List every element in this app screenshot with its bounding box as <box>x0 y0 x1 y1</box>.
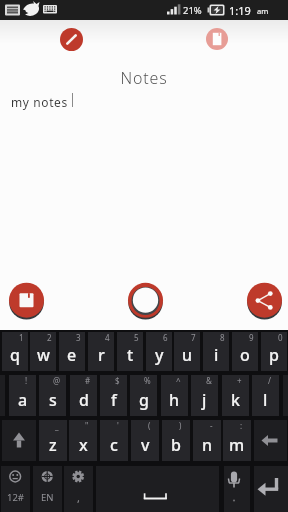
button[interactable]: q <box>2 332 28 371</box>
button[interactable]: z <box>39 420 67 461</box>
staticText: p <box>269 344 279 366</box>
button[interactable] <box>254 466 288 512</box>
staticText: 2 <box>47 332 52 343</box>
staticText: z <box>49 434 57 456</box>
staticText: ^ <box>176 375 181 386</box>
button[interactable]: m <box>223 420 251 461</box>
staticText: 4 <box>105 332 110 343</box>
button[interactable] <box>224 466 250 512</box>
button[interactable]: t <box>117 332 143 371</box>
staticText: e <box>67 344 77 366</box>
staticText: h <box>169 389 180 411</box>
staticText: _ <box>55 420 59 431</box>
button[interactable] <box>9 283 44 318</box>
button[interactable]: j <box>191 375 218 416</box>
staticText: EN <box>41 491 54 504</box>
button[interactable] <box>247 283 282 318</box>
staticText: v <box>141 434 150 456</box>
staticText: d <box>79 389 89 411</box>
staticText: my notes <box>11 94 68 110</box>
staticText: 8 <box>220 332 225 343</box>
staticText: 1:19 <box>229 3 251 18</box>
staticText: / <box>268 375 271 386</box>
button[interactable]: r <box>88 332 114 371</box>
staticText: j <box>202 389 207 411</box>
staticText: f <box>111 389 117 411</box>
staticText: b <box>171 434 181 456</box>
staticText: ! <box>25 375 28 386</box>
staticText: : <box>240 420 243 431</box>
staticText: 3 <box>76 332 81 343</box>
staticText: 0 <box>278 332 283 343</box>
staticText: ' <box>117 420 119 431</box>
button[interactable]: e <box>59 332 85 371</box>
staticText: ) <box>179 420 182 431</box>
button[interactable]: x <box>69 420 97 461</box>
button[interactable]: i <box>203 332 229 371</box>
staticText: % <box>144 375 151 386</box>
button[interactable] <box>206 28 228 50</box>
staticText: n <box>202 434 213 456</box>
staticText: y <box>155 344 164 366</box>
staticText: Notes <box>0 67 288 89</box>
staticText: " <box>85 420 89 431</box>
staticText: m <box>229 434 245 456</box>
staticText: $ <box>115 375 120 386</box>
button[interactable] <box>2 420 36 461</box>
staticText: 12# <box>7 491 25 504</box>
button[interactable] <box>96 466 219 512</box>
button[interactable] <box>60 28 83 51</box>
staticText: 21% <box>183 4 202 17</box>
staticText: t <box>127 344 134 366</box>
button[interactable]: b <box>162 420 190 461</box>
button[interactable]: n <box>193 420 221 461</box>
staticText: # <box>85 375 91 386</box>
staticText: x <box>79 434 88 456</box>
button[interactable]: , <box>64 466 93 512</box>
button[interactable]: o <box>232 332 258 371</box>
button[interactable]: 12# <box>1 466 30 512</box>
button[interactable]: l <box>252 375 279 416</box>
button[interactable]: s <box>39 375 66 416</box>
button[interactable]: w <box>30 332 56 371</box>
button[interactable]: EN <box>33 466 62 512</box>
staticText: 7 <box>191 332 196 343</box>
staticText: 9 <box>249 332 254 343</box>
button[interactable]: k <box>222 375 249 416</box>
staticText: s <box>49 389 57 411</box>
staticText: w <box>37 344 50 366</box>
button[interactable]: p <box>261 332 287 371</box>
staticText: ( <box>148 420 151 431</box>
staticText: , <box>77 490 80 505</box>
button[interactable]: d <box>70 375 97 416</box>
button[interactable]: h <box>161 375 188 416</box>
staticText: & <box>206 375 212 386</box>
button[interactable] <box>128 283 163 318</box>
button[interactable]: v <box>131 420 159 461</box>
staticText: g <box>139 389 149 411</box>
staticText: 1 <box>19 332 24 343</box>
button[interactable]: y <box>146 332 172 371</box>
button[interactable]: u <box>174 332 200 371</box>
staticText: k <box>231 389 240 411</box>
staticText: c <box>110 434 118 456</box>
staticText: - <box>210 420 213 431</box>
staticText: q <box>10 344 20 366</box>
staticText: + <box>237 375 242 386</box>
staticText: a <box>18 389 28 411</box>
staticText: o <box>240 344 250 366</box>
button[interactable]: c <box>100 420 128 461</box>
button[interactable]: a <box>9 375 36 416</box>
staticText: @ <box>53 375 61 386</box>
staticText: r <box>98 344 105 366</box>
staticText: i <box>214 344 219 366</box>
button[interactable]: f <box>100 375 127 416</box>
button[interactable] <box>254 420 287 461</box>
staticText: 5 <box>134 332 139 343</box>
staticText: u <box>182 344 193 366</box>
staticText: am <box>257 6 269 16</box>
button[interactable]: g <box>130 375 157 416</box>
staticText: l <box>263 389 268 411</box>
